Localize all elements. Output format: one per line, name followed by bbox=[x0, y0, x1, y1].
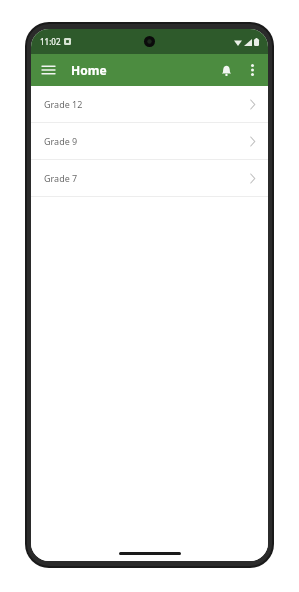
staticText: Grade 9 bbox=[44, 135, 78, 147]
button[interactable]: Grade 9 bbox=[31, 123, 268, 159]
button[interactable]: More options bbox=[239, 57, 265, 83]
button[interactable]: Grade 7 bbox=[31, 160, 268, 196]
button[interactable]: Grade 12 bbox=[31, 86, 268, 122]
staticText: 11:02 bbox=[40, 36, 61, 47]
staticText: Home bbox=[71, 62, 107, 78]
button[interactable]: Notifications bbox=[213, 57, 239, 83]
staticText: Grade 7 bbox=[44, 172, 78, 184]
button[interactable]: Open navigation menu bbox=[35, 57, 61, 83]
staticText: Grade 12 bbox=[44, 98, 83, 110]
